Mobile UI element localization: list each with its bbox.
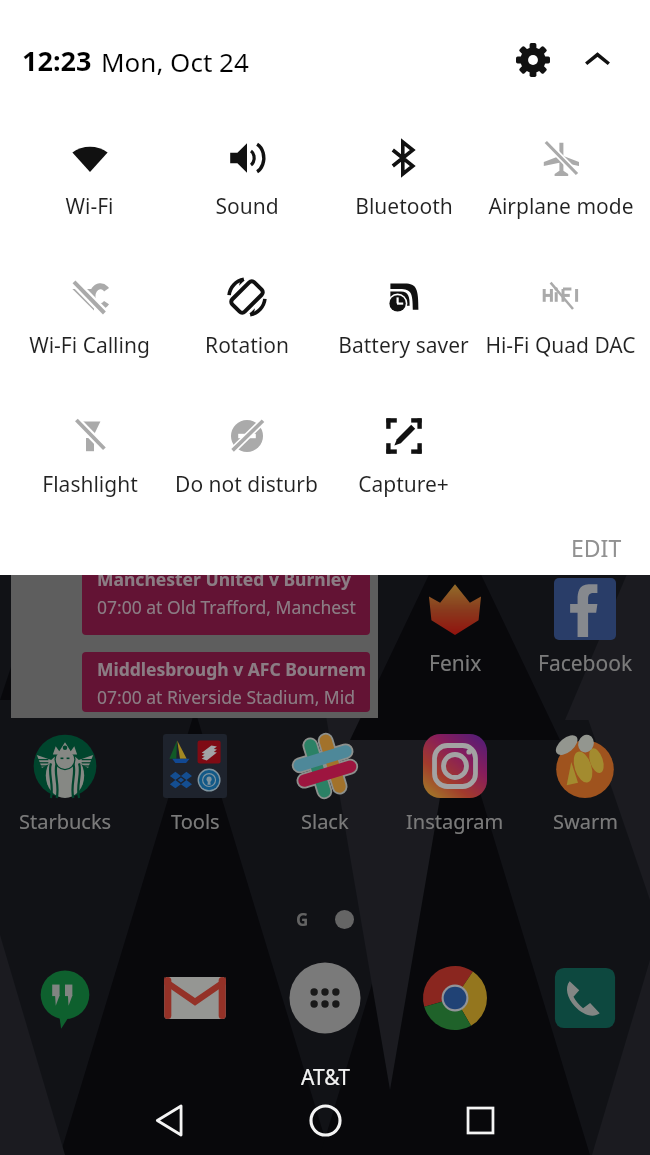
button[interactable]: Bluetooth — [325, 120, 482, 259]
button[interactable]: Gmail — [130, 955, 260, 1041]
staticText: Flashlight — [42, 470, 138, 499]
staticText: Manchester United v Burnley — [97, 477, 351, 501]
staticText: Facebook — [538, 649, 633, 678]
button[interactable]: Battery saver — [325, 259, 482, 398]
button[interactable]: Airplane mode — [482, 120, 639, 259]
button[interactable]: Tools — [130, 734, 260, 835]
button[interactable]: Middlesbrough v AFC Bournem — [82, 652, 370, 712]
button[interactable]: Hi-Fi Quad DAC — [482, 259, 639, 398]
staticText: Instagram — [406, 808, 504, 835]
staticText: 07:00 at Riverside Stadium, Mid — [97, 685, 356, 709]
button[interactable]: Slack — [260, 734, 390, 835]
staticText: Wi-Fi — [65, 192, 114, 221]
staticText: Bluetooth — [355, 192, 453, 221]
staticText: Do not disturb — [175, 470, 318, 499]
button[interactable]: Sound — [168, 120, 325, 259]
button[interactable]: Hangouts — [0, 955, 130, 1041]
staticText: Rotation — [205, 331, 289, 360]
button[interactable]: Home — [248, 1085, 403, 1155]
button[interactable]: Do not disturb — [168, 398, 325, 537]
staticText: Middlesbrough v AFC Bournem — [97, 657, 366, 681]
button[interactable]: Manchester United v Burnley — [82, 472, 370, 545]
staticText: 12:23 — [22, 42, 92, 79]
staticText: Swarm — [553, 808, 618, 835]
button[interactable]: Fenix — [390, 578, 520, 678]
button[interactable]: Back — [92, 1085, 248, 1155]
button[interactable]: Recents — [403, 1085, 558, 1155]
button[interactable]: Wi-Fi — [11, 120, 168, 259]
button[interactable]: Facebook — [520, 578, 650, 678]
button[interactable]: Apps — [260, 955, 390, 1041]
button[interactable]: Manchester United v Burnley — [82, 562, 370, 635]
staticText: Sound — [215, 192, 279, 221]
staticText: Tools — [171, 808, 220, 835]
staticText: Slack — [301, 808, 349, 835]
button[interactable]: Capture+ — [325, 398, 482, 537]
staticText: EDIT — [571, 532, 622, 563]
staticText: Capture+ — [358, 470, 449, 499]
button[interactable]: Swarm — [520, 734, 650, 835]
button[interactable]: Flashlight — [11, 398, 168, 537]
button[interactable]: Phone — [520, 955, 650, 1041]
button[interactable]: Chrome — [390, 955, 520, 1041]
staticText: Hi-Fi Quad DAC — [485, 331, 636, 360]
staticText: Manchester United v Burnley — [97, 567, 351, 591]
button[interactable]: 12:23 — [22, 42, 249, 79]
button[interactable]: Settings — [506, 33, 560, 87]
staticText: Airplane mode — [488, 192, 634, 221]
button[interactable]: EDIT — [565, 528, 628, 567]
staticText: Fenix — [429, 649, 482, 678]
staticText: G — [296, 908, 309, 931]
button[interactable]: Starbucks — [0, 734, 130, 835]
staticText: 07:00 at Old Trafford, Manchest — [97, 595, 356, 619]
button[interactable]: Collapse — [570, 33, 624, 87]
button[interactable]: Wi-Fi Calling — [11, 259, 168, 398]
staticText: Wi-Fi Calling — [29, 331, 150, 360]
button[interactable]: Instagram — [390, 734, 520, 835]
staticText: Mon, Oct 24 — [101, 44, 249, 79]
staticText: AT&T — [301, 1063, 350, 1092]
staticText: Battery saver — [338, 331, 469, 360]
button[interactable]: Rotation — [168, 259, 325, 398]
staticText: Starbucks — [19, 808, 112, 835]
